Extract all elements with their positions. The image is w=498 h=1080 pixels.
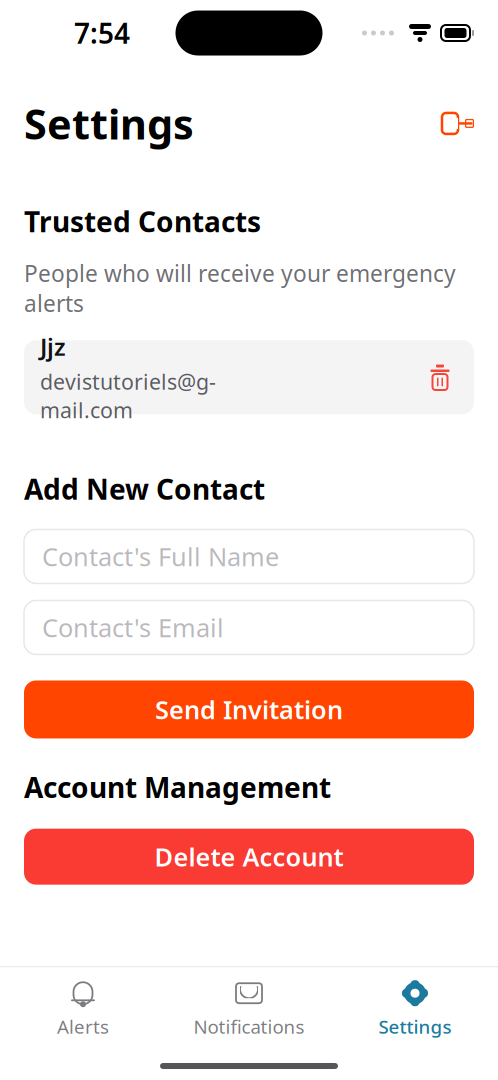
staticText: devistutoriels@gmail.com xyxy=(40,367,216,424)
button[interactable]: Notifications xyxy=(166,979,332,1039)
staticText: Contact's Email xyxy=(42,611,224,644)
staticText: Alerts xyxy=(57,1014,109,1039)
staticText: Jjz xyxy=(40,330,66,362)
staticText: 7:54 xyxy=(74,14,130,52)
button[interactable]: Delete Account xyxy=(24,829,474,885)
button[interactable]: Log out xyxy=(433,103,482,143)
staticText: Settings xyxy=(378,1014,451,1039)
staticText: Account Management xyxy=(24,768,331,806)
staticText: Send Invitation xyxy=(155,693,343,726)
staticText: Settings xyxy=(24,96,194,151)
button[interactable]: Send Invitation xyxy=(24,680,474,738)
staticText: Trusted Contacts xyxy=(24,203,261,240)
button[interactable]: Contact's Full Name xyxy=(24,529,474,583)
staticText: People who will receive your emergency a… xyxy=(24,258,456,318)
button[interactable]: Delete contact xyxy=(422,357,458,397)
staticText: Add New Contact xyxy=(24,470,265,507)
button[interactable]: Alerts xyxy=(0,979,166,1039)
staticText: Contact's Full Name xyxy=(42,540,279,573)
button[interactable]: Settings xyxy=(332,979,498,1039)
button[interactable]: Contact's Email xyxy=(24,600,474,654)
staticText: Delete Account xyxy=(154,840,343,873)
staticText: Notifications xyxy=(193,1014,304,1039)
